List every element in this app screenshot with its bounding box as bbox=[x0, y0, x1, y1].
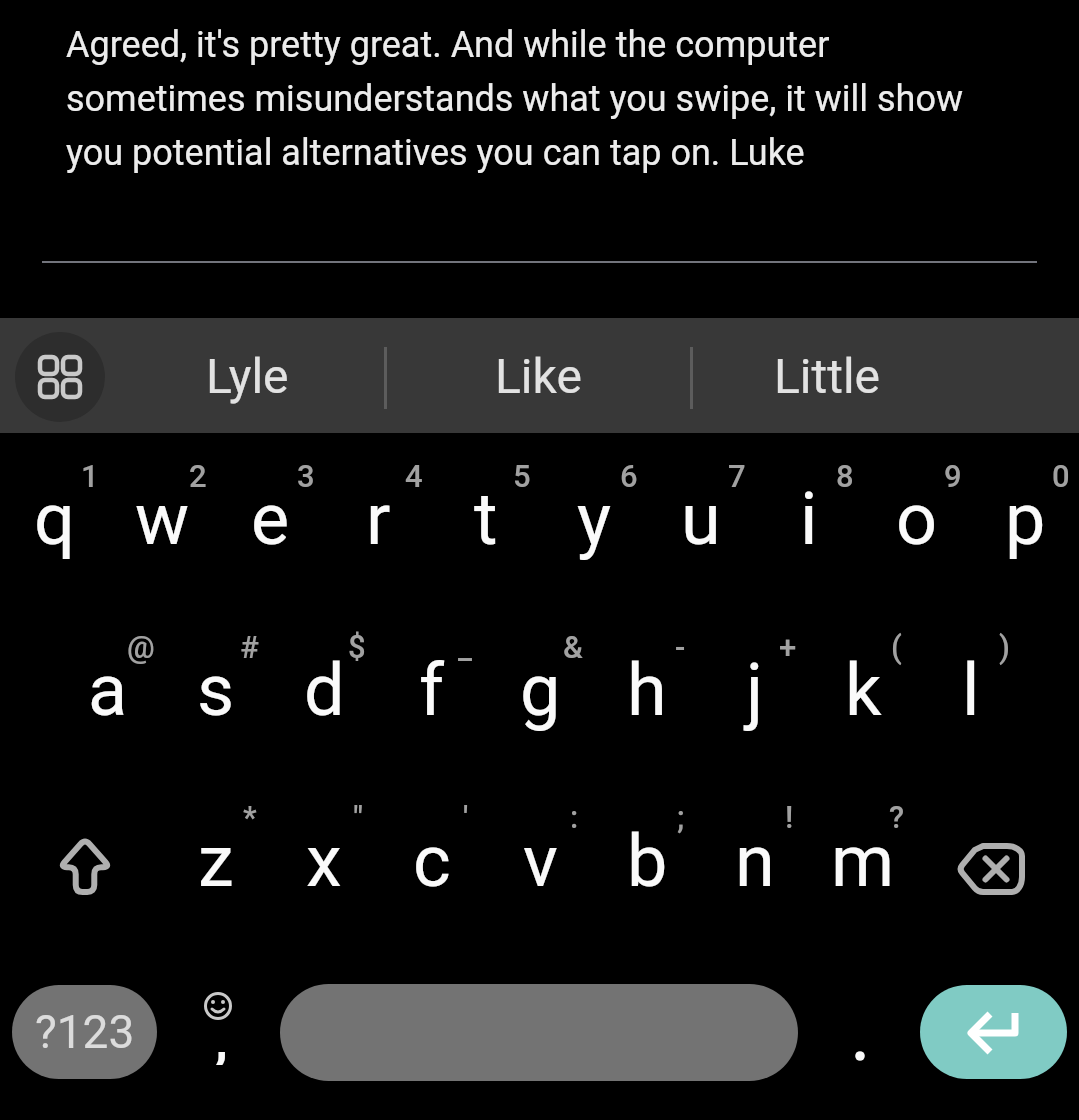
button[interactable]: ?123 bbox=[12, 985, 157, 1079]
staticText: t bbox=[474, 477, 498, 561]
staticText: 4 bbox=[405, 458, 423, 494]
button[interactable]: c bbox=[378, 775, 486, 946]
staticText: 9 bbox=[944, 458, 962, 494]
button[interactable]: j bbox=[701, 604, 809, 775]
button[interactable] bbox=[809, 946, 917, 1117]
staticText: & bbox=[563, 629, 583, 665]
staticText: Agreed, it's pretty great. And while the… bbox=[66, 24, 963, 174]
button[interactable]: h bbox=[593, 604, 701, 775]
button[interactable]: u bbox=[647, 433, 755, 604]
button[interactable]: b bbox=[593, 775, 701, 946]
button[interactable]: i bbox=[755, 433, 863, 604]
staticText: _ bbox=[458, 629, 472, 665]
staticText: + bbox=[779, 629, 797, 665]
button[interactable]: v bbox=[486, 775, 594, 946]
button[interactable]: m bbox=[809, 775, 917, 946]
staticText: e bbox=[251, 477, 290, 561]
staticText: 8 bbox=[836, 458, 854, 494]
button[interactable] bbox=[920, 985, 1067, 1079]
staticText: ! bbox=[785, 799, 794, 835]
staticText: ? bbox=[889, 799, 905, 835]
staticText: ?123 bbox=[35, 1005, 135, 1059]
staticText: z bbox=[198, 819, 234, 903]
button[interactable]: g bbox=[486, 604, 594, 775]
button[interactable] bbox=[162, 946, 270, 1117]
staticText: i bbox=[800, 477, 818, 561]
button[interactable]: l bbox=[917, 604, 1025, 775]
button[interactable]: s bbox=[162, 604, 270, 775]
staticText: u bbox=[681, 477, 721, 561]
button[interactable]: z bbox=[162, 775, 270, 946]
staticText: f bbox=[419, 648, 445, 732]
staticText: 5 bbox=[513, 458, 531, 494]
staticText: ) bbox=[999, 629, 1010, 665]
staticText: x bbox=[306, 819, 342, 903]
staticText: d bbox=[304, 648, 345, 732]
button[interactable]: Lyle bbox=[122, 318, 372, 433]
button[interactable]: Like bbox=[413, 318, 663, 433]
staticText: ' bbox=[463, 799, 469, 835]
staticText: o bbox=[896, 477, 938, 561]
staticText: v bbox=[523, 819, 558, 903]
staticText: Little bbox=[774, 348, 881, 404]
button[interactable] bbox=[917, 775, 1079, 946]
staticText: m bbox=[831, 819, 895, 903]
staticText: 0 bbox=[1052, 458, 1070, 494]
button[interactable]: o bbox=[863, 433, 971, 604]
staticText: k bbox=[845, 648, 882, 732]
staticText: Like bbox=[495, 348, 582, 404]
button[interactable]: r bbox=[324, 433, 432, 604]
button[interactable]: w bbox=[108, 433, 216, 604]
staticText: n bbox=[735, 819, 775, 903]
staticText: g bbox=[520, 648, 561, 732]
button[interactable]: d bbox=[270, 604, 378, 775]
staticText: q bbox=[34, 477, 75, 561]
staticText: r bbox=[366, 477, 391, 561]
button[interactable]: f bbox=[378, 604, 486, 775]
button[interactable]: p bbox=[971, 433, 1079, 604]
staticText: s bbox=[197, 648, 235, 732]
button[interactable]: q bbox=[0, 433, 108, 604]
staticText: 7 bbox=[728, 458, 746, 494]
staticText: $ bbox=[348, 629, 366, 665]
staticText: c bbox=[413, 819, 451, 903]
staticText: * bbox=[243, 799, 257, 835]
button[interactable]: x bbox=[270, 775, 378, 946]
staticText: h bbox=[627, 648, 667, 732]
staticText: # bbox=[240, 629, 259, 665]
staticText: @ bbox=[127, 629, 155, 665]
button[interactable]: a bbox=[54, 604, 162, 775]
staticText: a bbox=[88, 648, 128, 732]
staticText: 3 bbox=[297, 458, 315, 494]
staticText: w bbox=[135, 477, 190, 561]
button[interactable]: k bbox=[809, 604, 917, 775]
button[interactable]: n bbox=[701, 775, 809, 946]
button[interactable]: Little bbox=[702, 318, 952, 433]
staticText: , bbox=[215, 1005, 228, 1065]
button[interactable] bbox=[15, 332, 105, 422]
button[interactable] bbox=[0, 775, 162, 946]
button[interactable]: t bbox=[432, 433, 540, 604]
staticText: - bbox=[675, 629, 686, 665]
button[interactable] bbox=[280, 984, 798, 1081]
staticText: 2 bbox=[189, 458, 207, 494]
button[interactable]: e bbox=[216, 433, 324, 604]
staticText: 6 bbox=[620, 458, 638, 494]
staticText: l bbox=[962, 648, 980, 732]
staticText: " bbox=[353, 799, 364, 835]
staticText: ; bbox=[677, 799, 685, 835]
staticText: : bbox=[570, 799, 579, 835]
staticText: y bbox=[577, 477, 612, 561]
button[interactable]: y bbox=[540, 433, 648, 604]
staticText: ( bbox=[891, 629, 902, 665]
staticText: 1 bbox=[81, 458, 99, 494]
staticText: b bbox=[627, 819, 668, 903]
staticText: p bbox=[1005, 477, 1046, 561]
staticText: Lyle bbox=[206, 348, 289, 404]
staticText: j bbox=[746, 648, 764, 732]
